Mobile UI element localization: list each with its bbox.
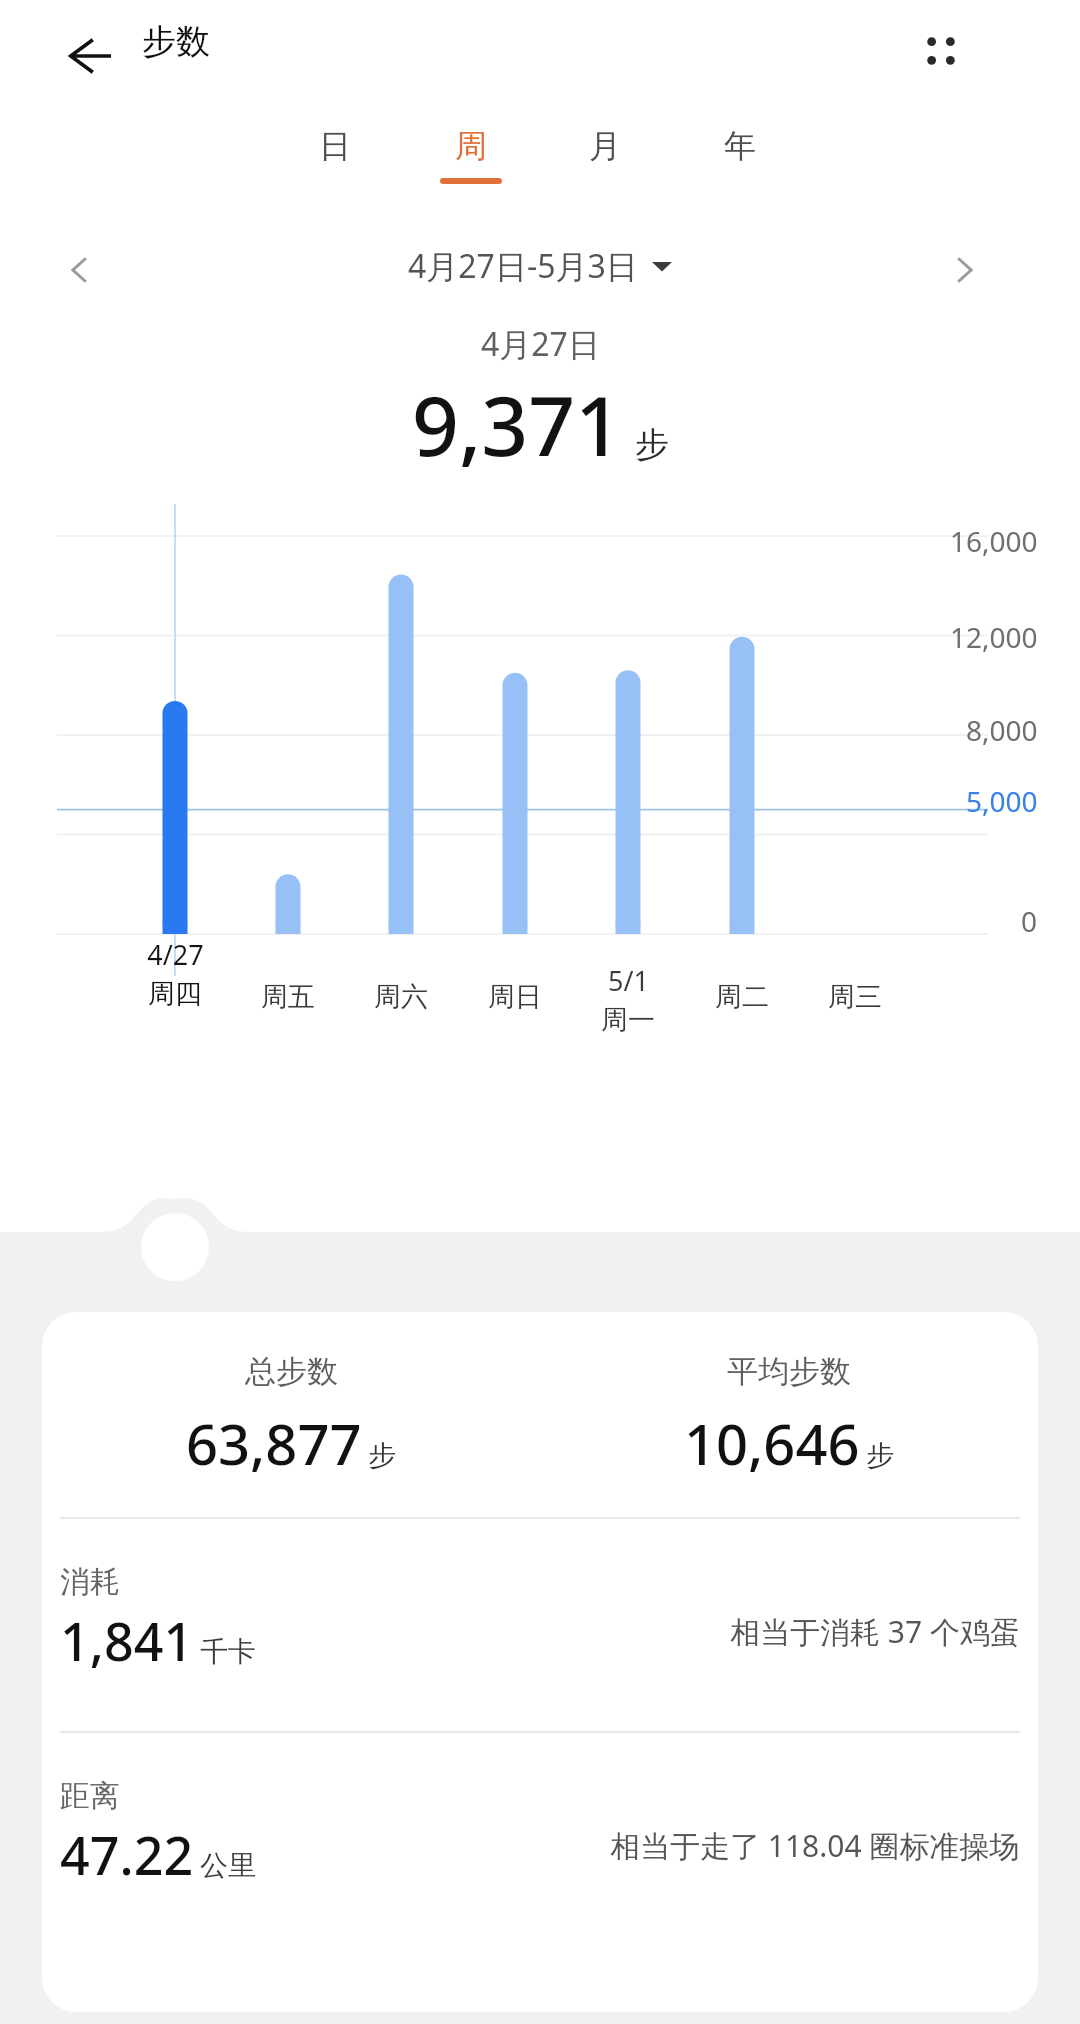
staticText: 4月27日-5月3日 [408, 244, 638, 288]
staticText: 8,000 [966, 711, 1038, 749]
staticText: 千卡 [200, 1634, 256, 1669]
button[interactable]: 平均步数 [540, 1352, 1038, 1481]
button[interactable]: Back [52, 20, 124, 92]
button[interactable]: 周二 [682, 980, 802, 1014]
button[interactable]: 周三 [795, 980, 915, 1014]
staticText: 步数 [142, 20, 210, 63]
staticText: 消耗 [60, 1563, 120, 1601]
staticText: 周四 [148, 977, 202, 1011]
staticText: 相当于消耗 37 个鸡蛋 [730, 1611, 1020, 1652]
staticText: 16,000 [950, 522, 1038, 560]
staticText: 12,000 [950, 618, 1038, 656]
staticText: 平均步数 [727, 1352, 851, 1391]
staticText: 5,000 [966, 782, 1038, 820]
button[interactable]: 4月27日-5月3日 [408, 244, 672, 288]
button[interactable]: Previous week [42, 232, 118, 308]
staticText: 周一 [601, 1003, 655, 1037]
staticText: 月 [589, 126, 621, 166]
staticText: 周 [455, 126, 487, 166]
staticText: 1,841 [60, 1605, 194, 1676]
staticText: 步 [368, 1438, 396, 1473]
button[interactable]: 周五 [228, 980, 348, 1014]
staticText: 4月27日 [481, 322, 600, 366]
button[interactable]: 周 [417, 126, 525, 218]
button[interactable]: 周日 [455, 980, 575, 1014]
staticText: 相当于走了 118.04 圈标准操场 [610, 1825, 1020, 1866]
staticText: 公里 [200, 1848, 256, 1883]
button[interactable]: 消耗 [42, 1519, 1038, 1731]
button[interactable]: 总步数 [42, 1352, 540, 1481]
staticText: 步 [866, 1438, 894, 1473]
staticText: 步 [635, 423, 669, 466]
staticText: 63,877 [186, 1405, 362, 1481]
staticText: 周三 [828, 980, 882, 1014]
staticText: 年 [724, 126, 756, 166]
staticText: 0 [1021, 902, 1038, 940]
staticText: 47.22 [60, 1819, 194, 1890]
staticText: 周六 [374, 980, 428, 1014]
button[interactable]: 距离 [42, 1733, 1038, 1945]
staticText: 周五 [261, 980, 315, 1014]
button[interactable]: 周六 [341, 980, 461, 1014]
staticText: 周日 [488, 980, 542, 1014]
staticText: 10,646 [684, 1405, 860, 1481]
staticText: 5/1 [608, 962, 649, 999]
staticText: 4/27 [147, 936, 204, 973]
staticText: 9,371 [412, 368, 623, 480]
staticText: 日 [319, 126, 351, 166]
button[interactable]: 月 [551, 126, 659, 218]
button[interactable]: More options [902, 12, 980, 90]
button[interactable]: 年 [686, 126, 794, 218]
button[interactable]: 5/1 [568, 962, 688, 1037]
button[interactable]: 4/27 [115, 936, 235, 1011]
button[interactable]: 日 [281, 126, 389, 218]
staticText: 距离 [60, 1777, 120, 1815]
staticText: 周二 [715, 980, 769, 1014]
staticText: 总步数 [245, 1352, 338, 1391]
button[interactable]: Next week [926, 232, 1002, 308]
